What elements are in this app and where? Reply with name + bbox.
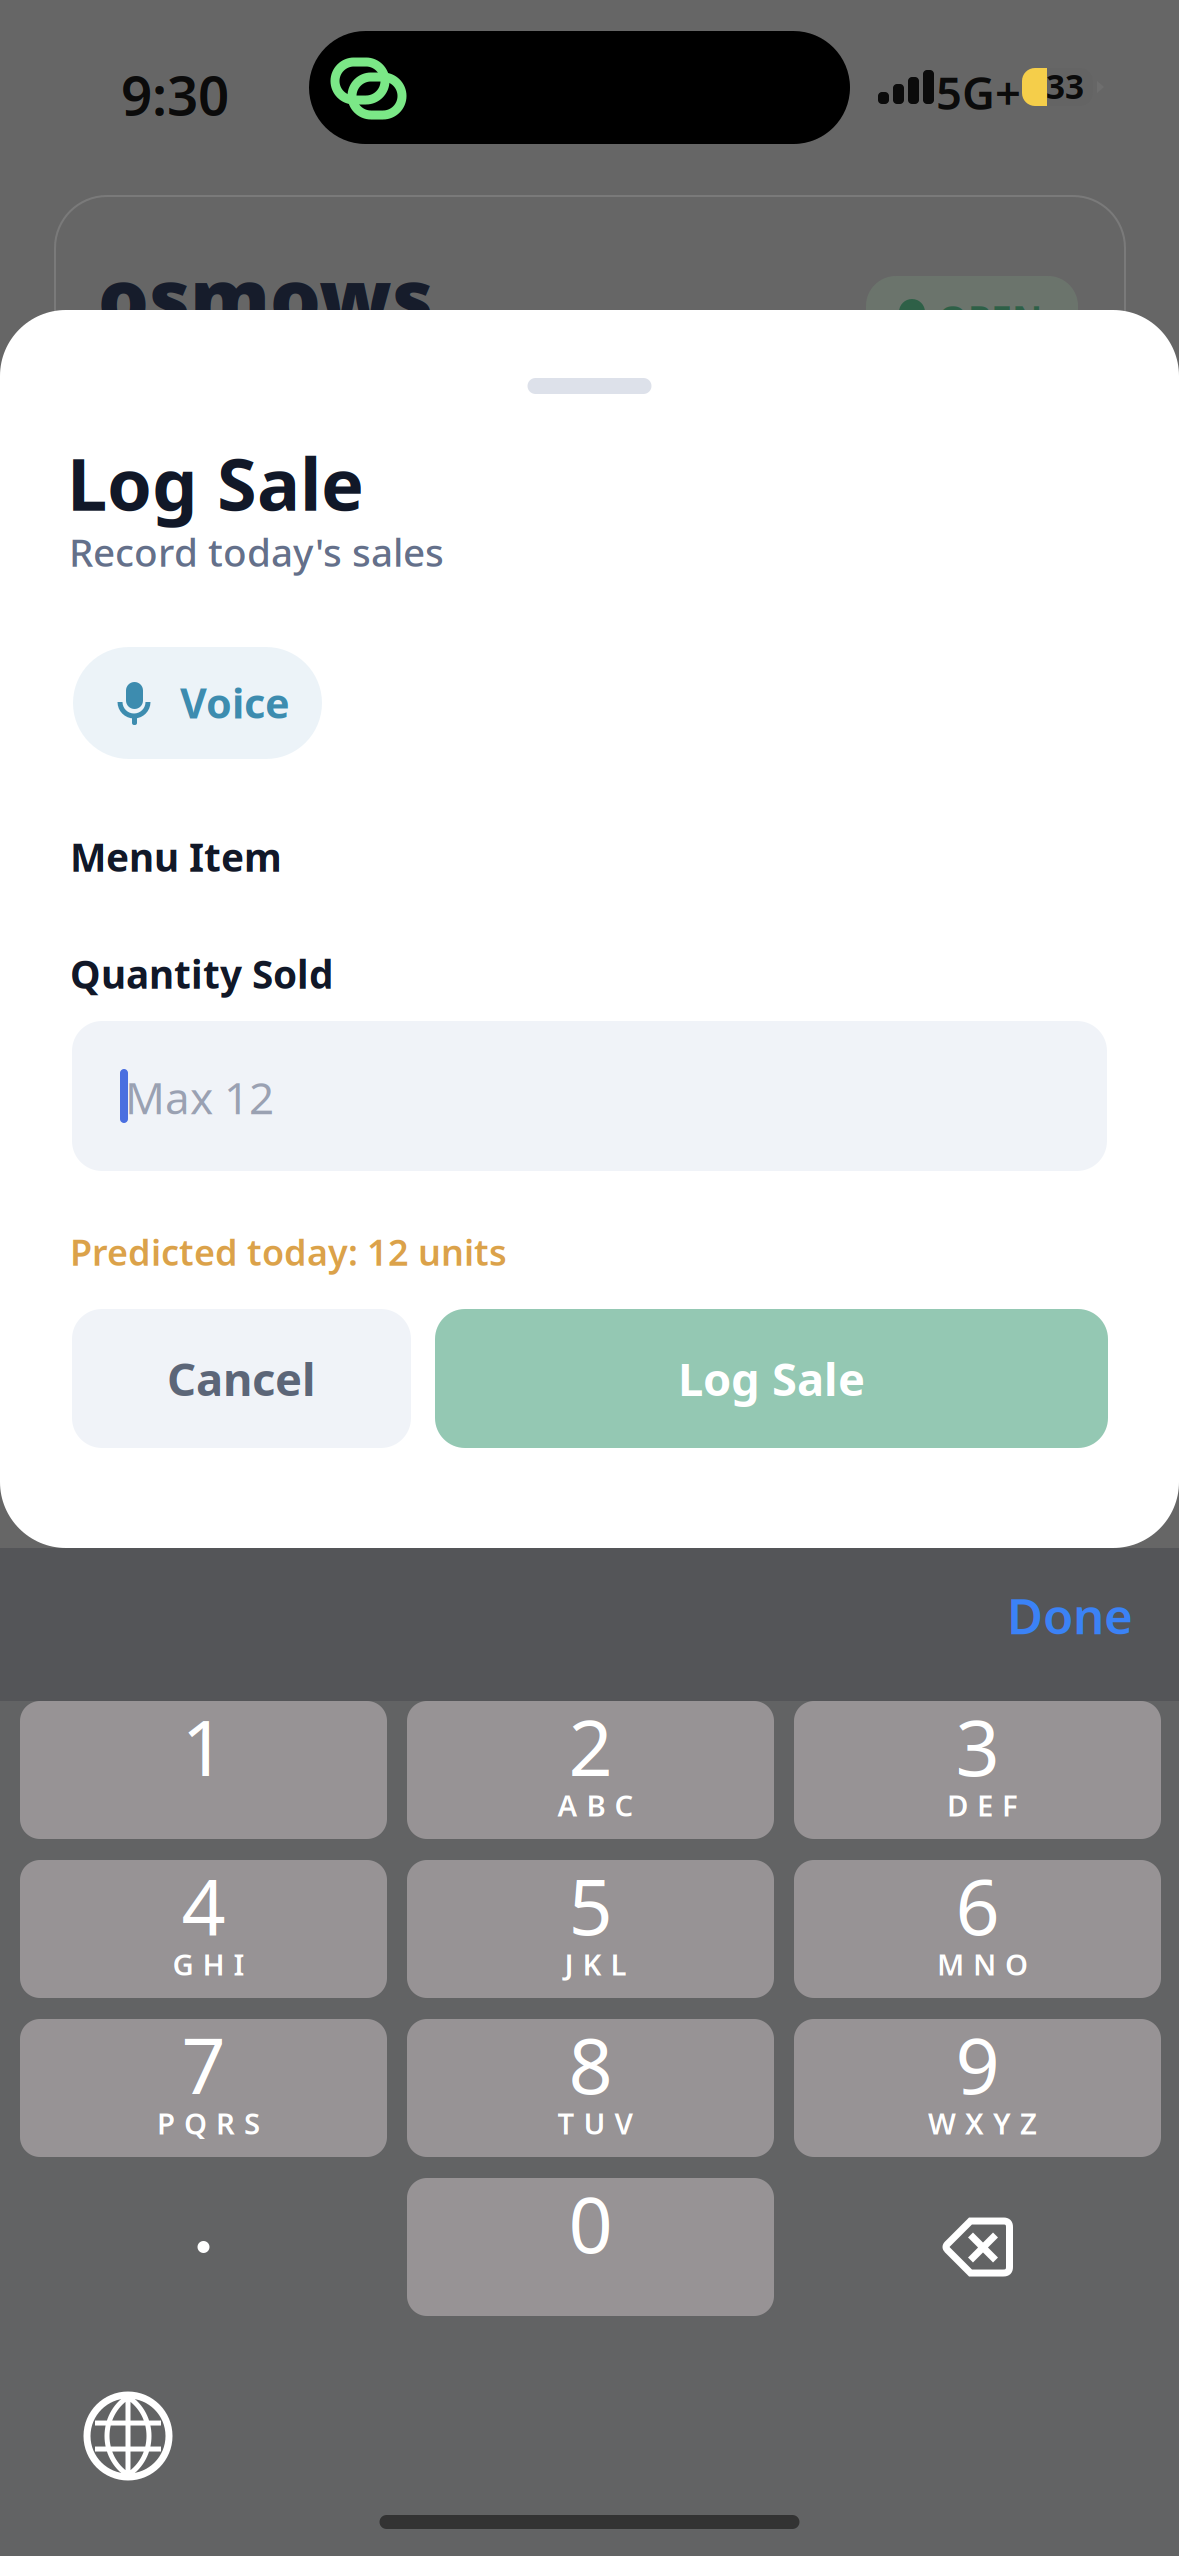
button[interactable]: 9 — [794, 2019, 1161, 2157]
staticText: 0 — [568, 2172, 612, 2274]
button[interactable]: 3 — [794, 1701, 1161, 1839]
staticText: 5G+ — [936, 62, 1021, 122]
staticText: Log Sale — [67, 435, 364, 531]
button[interactable]: 4 — [20, 1860, 387, 1998]
button[interactable]: 0 — [407, 2178, 774, 2316]
button[interactable]: Voice — [73, 647, 322, 759]
staticText: 2 — [568, 1695, 612, 1797]
button[interactable]: Next keyboard — [87, 2395, 169, 2477]
staticText: 33 — [1046, 64, 1084, 108]
button[interactable]: 8 — [407, 2019, 774, 2157]
button[interactable]: 7 — [20, 2019, 387, 2157]
staticText: ABC — [557, 1785, 633, 1824]
staticText: 9:30 — [121, 58, 229, 131]
staticText: OPEN — [938, 294, 1042, 344]
staticText: Done — [1007, 1582, 1133, 1648]
button[interactable]: Log Sale — [435, 1309, 1108, 1448]
staticText: TUV — [557, 2103, 633, 2142]
button[interactable]: 5 — [407, 1860, 774, 1998]
staticText: Menu Item — [70, 831, 282, 882]
button[interactable]: Done — [985, 1565, 1155, 1665]
staticText: 4 — [181, 1854, 225, 1956]
staticText: 1 — [181, 1695, 225, 1797]
staticText: JKL — [564, 1944, 626, 1983]
button[interactable]: Delete — [794, 2178, 1161, 2316]
staticText: 6 — [955, 1854, 999, 1956]
staticText: Max 12 — [125, 1068, 274, 1126]
staticText: PQRS — [157, 2103, 260, 2142]
staticText: 7 — [181, 2013, 225, 2115]
staticText: Record today's sales — [69, 526, 444, 577]
staticText: 5 — [568, 1854, 612, 1956]
staticText: Log Sale — [678, 1348, 865, 1409]
staticText: WXYZ — [928, 2103, 1037, 2142]
staticText: DEF — [947, 1785, 1018, 1824]
staticText: Cancel — [167, 1348, 316, 1409]
staticText: 3 — [955, 1695, 999, 1797]
button[interactable]: 2 — [407, 1701, 774, 1839]
staticText: Quantity Sold — [70, 948, 333, 999]
button[interactable]: 6 — [794, 1860, 1161, 1998]
button[interactable]: Decimal point — [20, 2178, 387, 2316]
staticText: Voice — [180, 675, 290, 730]
staticText: GHI — [172, 1944, 244, 1983]
staticText: Predicted today: 12 units — [70, 1228, 507, 1276]
button[interactable]: Cancel — [72, 1309, 411, 1448]
staticText: MNO — [937, 1944, 1028, 1983]
staticText: 9 — [955, 2013, 999, 2115]
staticText: osmows — [98, 243, 433, 349]
staticText: 8 — [568, 2013, 612, 2115]
button[interactable]: 1 — [20, 1701, 387, 1839]
